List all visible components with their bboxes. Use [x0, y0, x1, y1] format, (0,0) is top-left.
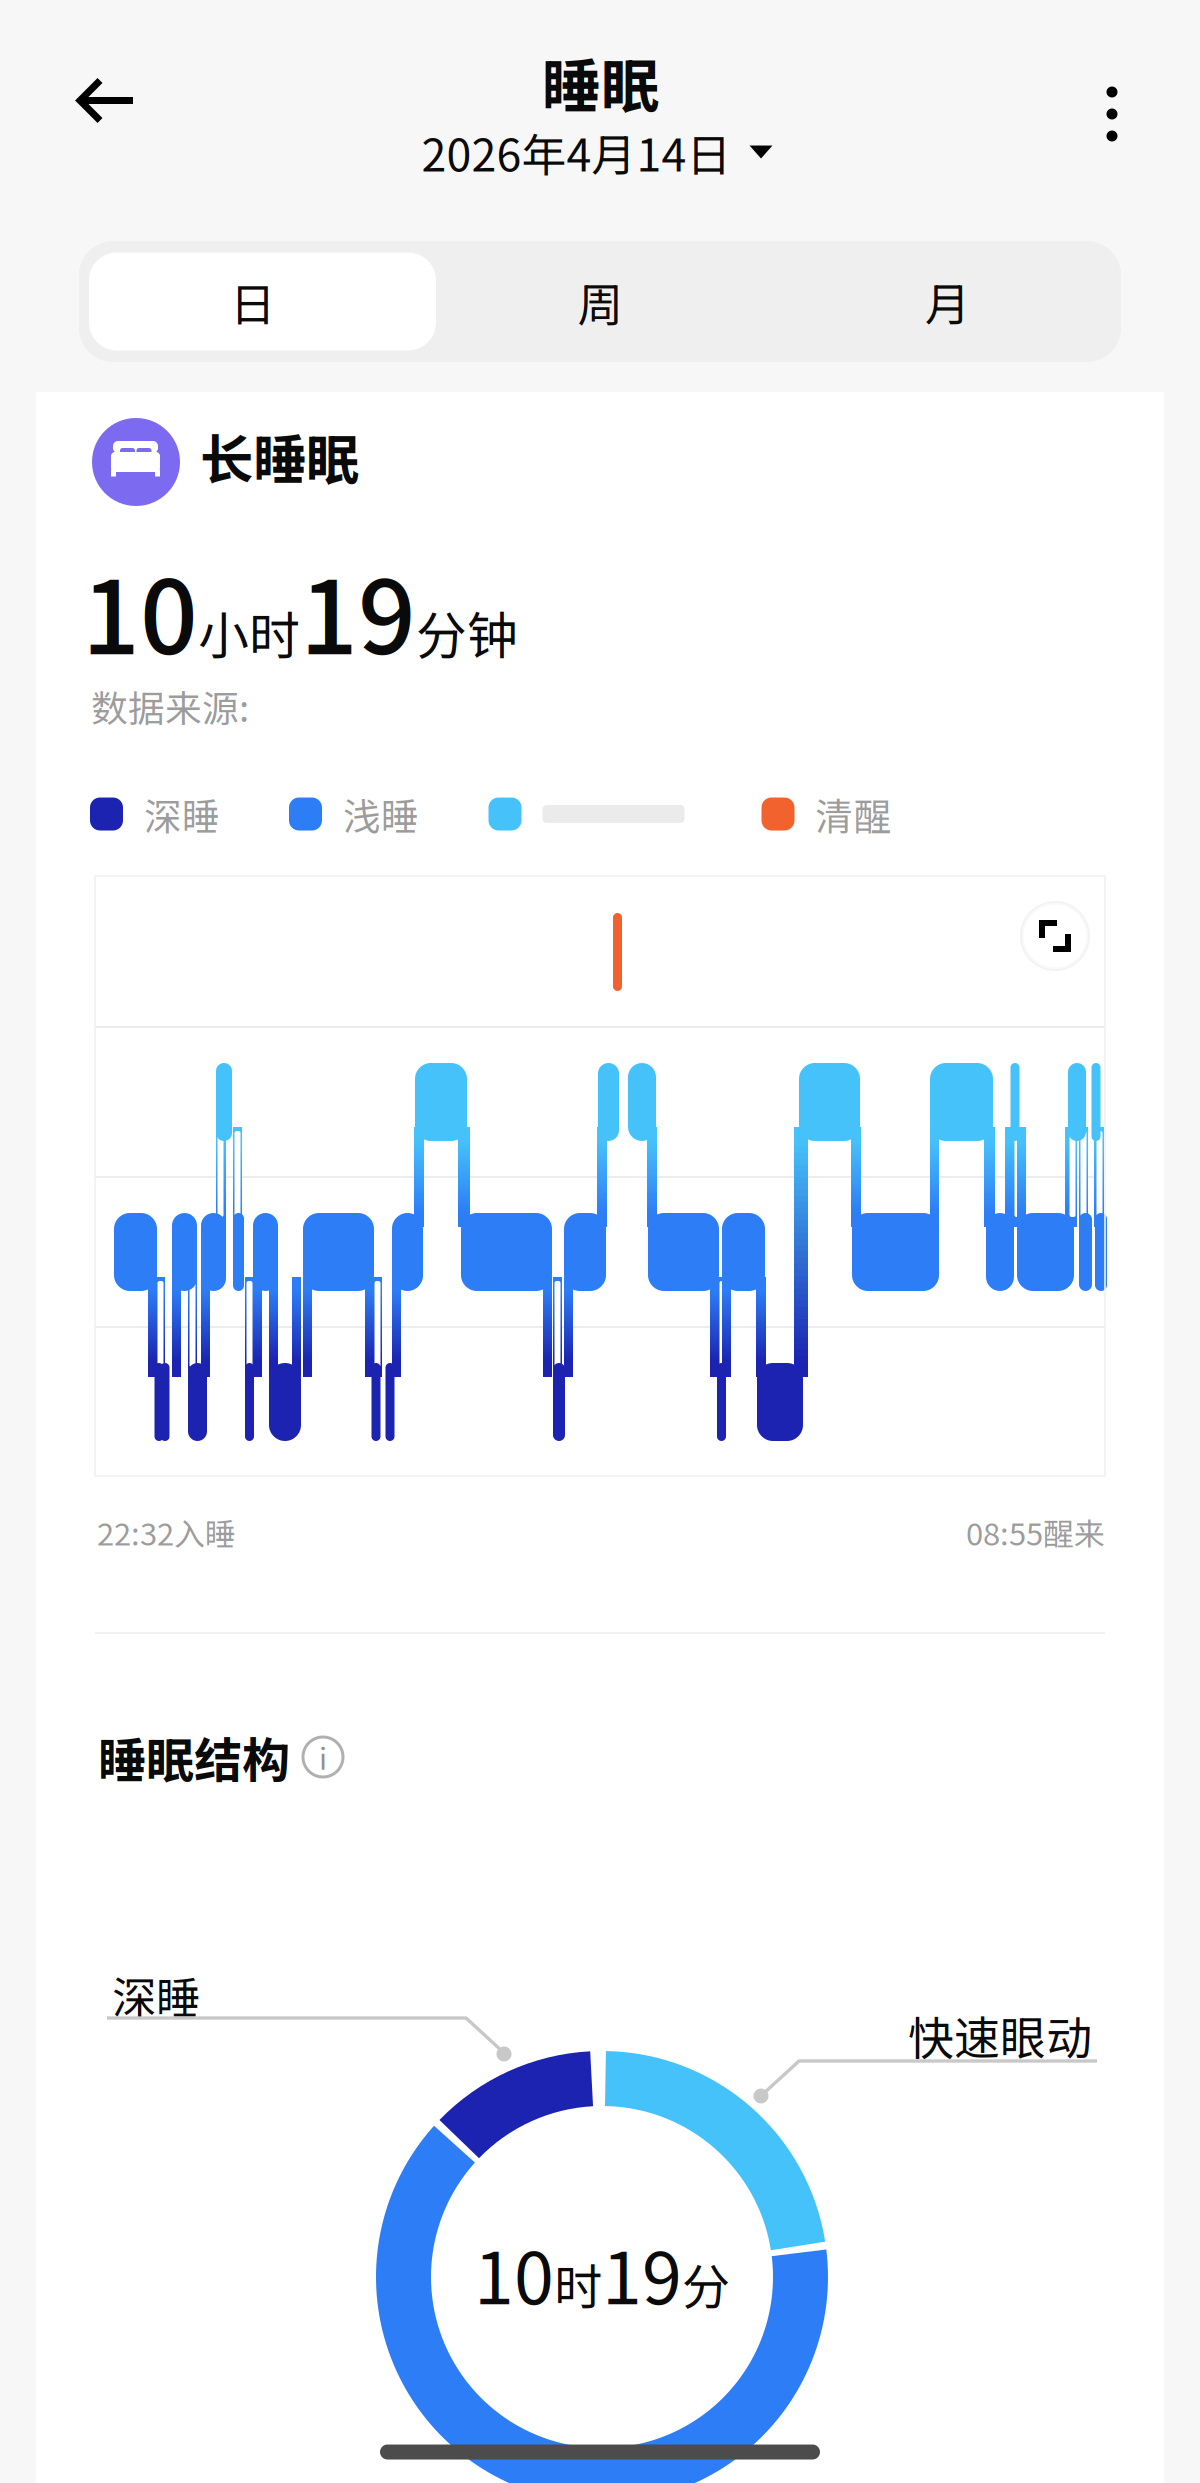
staticText: 深睡 [144, 787, 220, 841]
staticText: 日 [230, 269, 275, 334]
staticText: 睡眠结构 [98, 1722, 290, 1792]
button[interactable]: More options [1078, 58, 1145, 169]
staticText: 2026年4月14日 [421, 120, 731, 184]
staticText: 数据来源: [91, 679, 249, 733]
staticText: i [319, 1736, 327, 1778]
staticText: 小时 [198, 595, 300, 669]
staticText: 快速眼动 [908, 2002, 1092, 2068]
staticText: 睡眠 [542, 39, 660, 124]
staticText: 月 [925, 269, 970, 334]
staticText: 浅睡 [343, 787, 419, 841]
staticText: 清醒 [815, 787, 891, 841]
button[interactable]: Back [49, 51, 163, 150]
staticText: 长睡眠 [200, 417, 359, 495]
button[interactable]: 月 [774, 241, 1121, 362]
staticText: 22:32入睡 [97, 1510, 236, 1554]
button[interactable]: 2026年4月14日 [409, 108, 784, 196]
staticText: 深睡 [112, 1963, 200, 2027]
staticText: 10 [474, 2221, 554, 2325]
staticText: 10 [82, 537, 198, 683]
button[interactable]: 日 [79, 241, 426, 362]
staticText: 19 [300, 537, 416, 683]
button[interactable]: About sleep structure [303, 1736, 343, 1778]
staticText: 08:55醒来 [966, 1510, 1105, 1554]
staticText: 19 [602, 2221, 682, 2325]
staticText: 分钟 [416, 595, 518, 669]
staticText: 分 [682, 2249, 730, 2318]
staticText: 周 [577, 269, 622, 334]
staticText: 时 [554, 2249, 602, 2318]
button[interactable]: Expand chart [1020, 901, 1090, 971]
button[interactable]: 周 [426, 241, 774, 362]
